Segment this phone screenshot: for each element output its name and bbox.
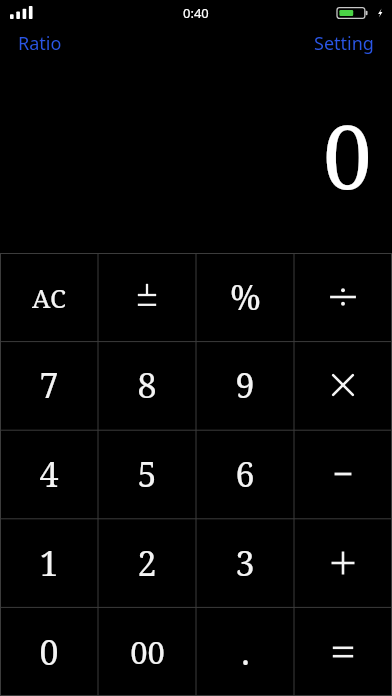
button[interactable]: Add (294, 518, 392, 607)
button[interactable]: AC (0, 253, 98, 341)
button[interactable]: Plus minus (98, 253, 196, 341)
staticText: AC (32, 280, 66, 315)
staticText: 7 (39, 362, 59, 408)
button[interactable]: 0 (0, 607, 98, 696)
staticText: 0 (39, 629, 59, 675)
staticText: 0 (322, 95, 372, 215)
staticText: 6 (235, 451, 255, 497)
staticText: 2 (137, 540, 157, 586)
staticText: . (241, 629, 250, 675)
button[interactable]: % (196, 253, 294, 341)
staticText: 1 (39, 540, 59, 586)
button[interactable]: 9 (196, 341, 294, 429)
staticText: 9 (235, 362, 255, 408)
button[interactable]: 1 (0, 518, 98, 607)
button[interactable]: Subtract (294, 429, 392, 518)
button[interactable]: 7 (0, 341, 98, 429)
staticText: 8 (137, 362, 157, 408)
staticText: 3 (235, 540, 255, 586)
button[interactable]: 4 (0, 429, 98, 518)
button[interactable]: Ratio (0, 26, 74, 61)
button[interactable]: Equals (294, 607, 392, 696)
staticText: % (230, 274, 261, 320)
button[interactable]: Setting (302, 26, 392, 61)
button[interactable]: Divide (294, 253, 392, 341)
button[interactable]: 2 (98, 518, 196, 607)
button[interactable]: 8 (98, 341, 196, 429)
staticText: 5 (137, 451, 157, 497)
button[interactable]: 5 (98, 429, 196, 518)
button[interactable]: 3 (196, 518, 294, 607)
staticText: 4 (39, 451, 59, 497)
button[interactable]: 6 (196, 429, 294, 518)
button[interactable]: Multiply (294, 341, 392, 429)
button[interactable]: 00 (98, 607, 196, 696)
staticText: Setting (314, 31, 374, 56)
staticText: 00 (130, 631, 165, 673)
staticText: Ratio (18, 31, 62, 56)
button[interactable]: . (196, 607, 294, 696)
staticText: 0:40 (183, 4, 209, 22)
